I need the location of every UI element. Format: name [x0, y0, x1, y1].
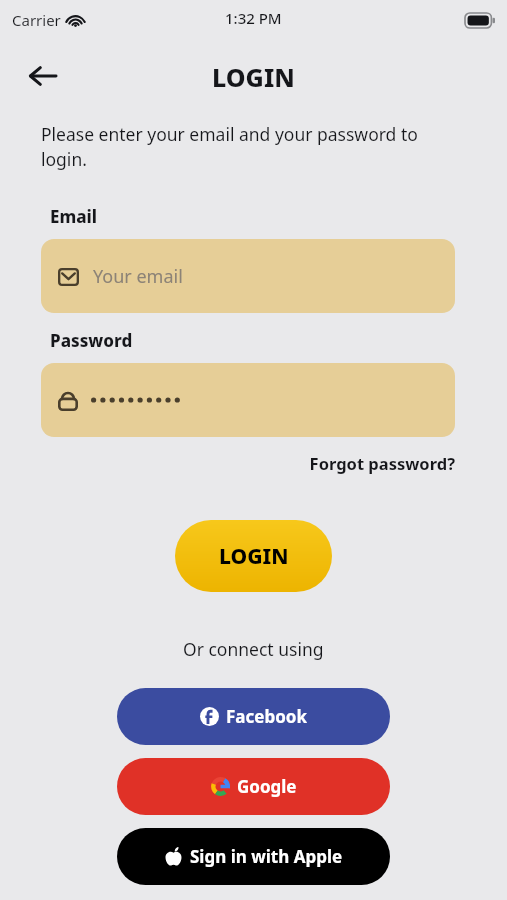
button[interactable]: Facebook [117, 688, 390, 745]
button[interactable]: LOGIN [175, 520, 332, 592]
staticText: 1:32 PM [225, 8, 282, 28]
staticText: Or connect using [183, 637, 324, 661]
button[interactable]: Sign in with Apple [117, 828, 390, 885]
staticText: Your email [93, 264, 183, 289]
button[interactable]: Forgot password? [300, 452, 455, 474]
staticText: LOGIN [212, 60, 295, 94]
button[interactable]: Back [18, 52, 66, 100]
staticText: Facebook [226, 705, 307, 728]
button[interactable]: Your email [41, 239, 455, 313]
staticText: Email [50, 205, 98, 228]
button[interactable] [41, 363, 455, 437]
staticText: Sign in with Apple [190, 845, 343, 868]
button[interactable]: Google [117, 758, 390, 815]
staticText: Google [237, 775, 297, 798]
staticText: Password [50, 329, 133, 352]
staticText: Carrier [12, 10, 61, 30]
staticText: Forgot password? [309, 452, 455, 474]
staticText: LOGIN [219, 542, 289, 571]
staticText: Please enter your email and your passwor… [41, 122, 461, 171]
